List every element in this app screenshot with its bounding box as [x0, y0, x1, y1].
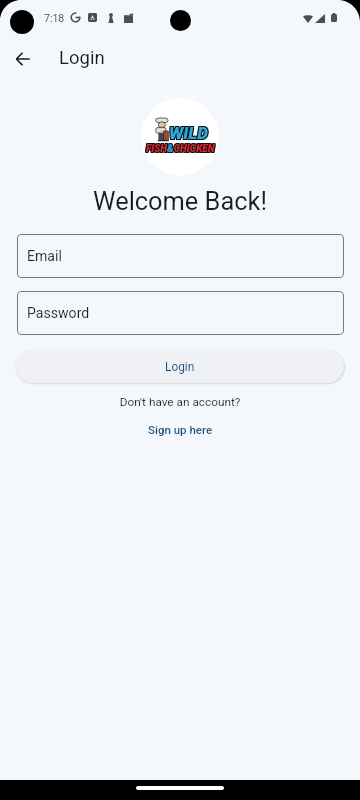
staticText: Login [165, 360, 195, 374]
staticText: WILD [168, 124, 207, 144]
staticText: FISH&CHICKEN [147, 143, 216, 155]
button[interactable]: Email [17, 234, 344, 278]
button[interactable]: Sign up here [142, 420, 219, 439]
button[interactable]: Back [1, 37, 45, 81]
button[interactable]: Login [16, 350, 344, 383]
staticText: WILD [168, 122, 207, 142]
button[interactable]: Password [17, 291, 344, 335]
staticText: FISH&CHICKEN [147, 144, 216, 156]
staticText: Email [27, 248, 62, 265]
staticText: WILD [169, 123, 208, 143]
staticText: FISH&CHICKEN [145, 142, 214, 154]
staticText: Login [59, 47, 105, 69]
staticText: Sign up here [148, 423, 213, 436]
staticText: WILD [170, 122, 209, 142]
staticText: WILD [169, 122, 208, 142]
staticText: FISH&CHICKEN [145, 143, 214, 155]
staticText: Don't have an account? [0, 395, 360, 409]
staticText: Password [27, 305, 90, 322]
staticText: WILD [168, 123, 207, 143]
staticText: FISH&CHICKEN [146, 142, 215, 154]
staticText: Welcome Back! [0, 186, 360, 216]
staticText: FISH&CHICKEN [146, 144, 215, 156]
staticText: 7:18 [44, 12, 65, 24]
staticText: FISH&CHICKEN [147, 142, 216, 154]
staticText: WILD [170, 123, 209, 143]
staticText: WILD [170, 124, 209, 144]
staticText: FISH&CHICKEN [145, 144, 214, 156]
staticText: WILD [169, 124, 208, 144]
staticText: FISH&CHICKEN [146, 143, 215, 155]
